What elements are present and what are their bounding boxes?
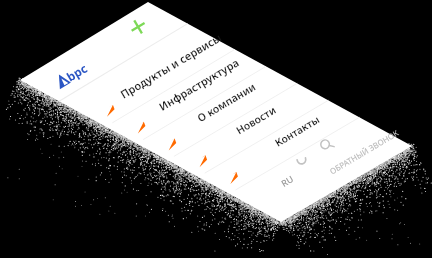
button[interactable]: BPC mobile site menu mockup xyxy=(0,0,432,258)
